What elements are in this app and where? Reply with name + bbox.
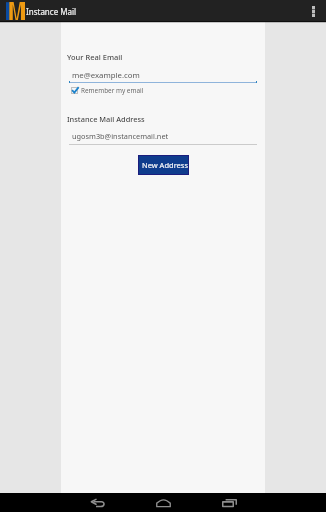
- button[interactable]: Back: [80, 493, 114, 512]
- button[interactable]: New Address: [139, 156, 188, 174]
- button[interactable]: More options: [302, 0, 324, 22]
- staticText: ugosm3b@instancemail.net: [72, 131, 169, 141]
- button[interactable]: [68, 85, 146, 96]
- button[interactable]: Home: [146, 493, 180, 512]
- staticText: Instance Mail: [26, 6, 77, 17]
- staticText: Instance Mail Address: [67, 114, 145, 124]
- staticText: Your Real Email: [67, 52, 123, 62]
- staticText: New Address: [142, 160, 189, 170]
- staticText: me@example.com: [72, 70, 140, 81]
- staticText: Remember my email: [81, 86, 144, 95]
- button[interactable]: Recent apps: [212, 493, 246, 512]
